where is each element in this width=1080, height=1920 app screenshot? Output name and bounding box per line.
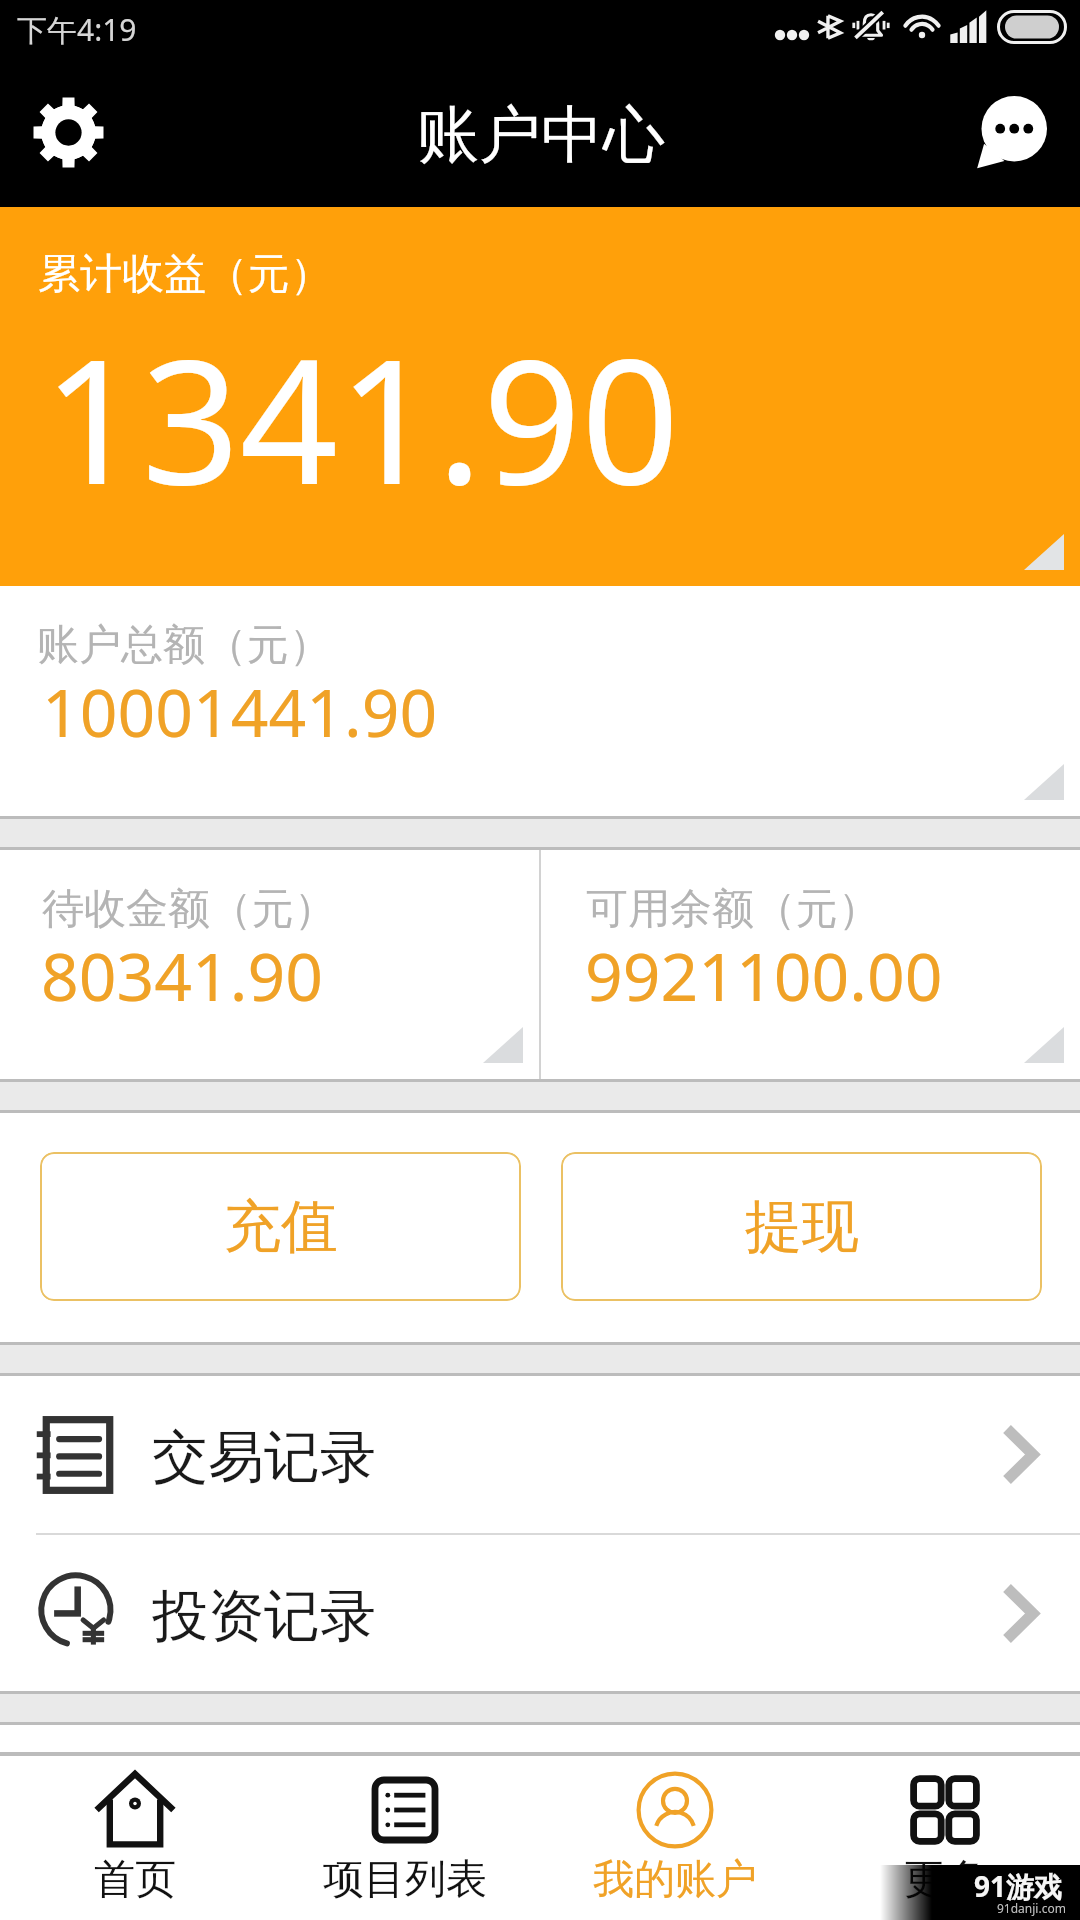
button[interactable]: 充值	[40, 1152, 521, 1301]
staticText: 首页	[94, 1854, 176, 1906]
button[interactable]: Messages	[943, 70, 1080, 207]
staticText: 9921100.00	[585, 930, 943, 1020]
staticText: 累计收益（元）	[38, 248, 332, 301]
staticText: 91danji.com	[997, 1900, 1066, 1916]
staticText: 91游戏	[974, 1867, 1063, 1905]
staticText: 投资记录	[152, 1581, 376, 1652]
button[interactable]: 可用余额（元）	[541, 850, 1080, 1079]
staticText: 10001441.90	[42, 666, 438, 756]
staticText: 充值	[224, 1191, 338, 1263]
staticText: 下午4:19	[17, 9, 137, 50]
staticText: 更多	[904, 1854, 986, 1906]
staticText: 账户中心	[417, 96, 665, 174]
button[interactable]: 提现	[561, 1152, 1042, 1301]
button[interactable]: 投资记录	[0, 1535, 1080, 1691]
staticText: 提现	[745, 1191, 859, 1263]
staticText: 待收金额（元）	[42, 883, 336, 936]
button[interactable]: 累计收益（元）	[0, 207, 1080, 586]
button[interactable]: 项目列表	[270, 1756, 540, 1920]
button[interactable]: 待收金额（元）	[0, 850, 539, 1079]
button[interactable]: Settings	[0, 70, 137, 207]
button[interactable]: 我的账户	[540, 1756, 810, 1920]
staticText: 项目列表	[323, 1854, 487, 1906]
staticText: 交易记录	[152, 1422, 376, 1493]
staticText: 80341.90	[41, 930, 323, 1020]
staticText: 1341.90	[43, 300, 680, 534]
button[interactable]: 账户总额（元）	[0, 586, 1080, 816]
button[interactable]: 更多	[810, 1756, 1080, 1920]
staticText: 账户总额（元）	[37, 619, 331, 672]
staticText: 可用余额（元）	[586, 883, 880, 936]
staticText: 我的账户	[593, 1854, 757, 1906]
button[interactable]: 交易记录	[0, 1376, 1080, 1533]
button[interactable]: 首页	[0, 1756, 270, 1920]
